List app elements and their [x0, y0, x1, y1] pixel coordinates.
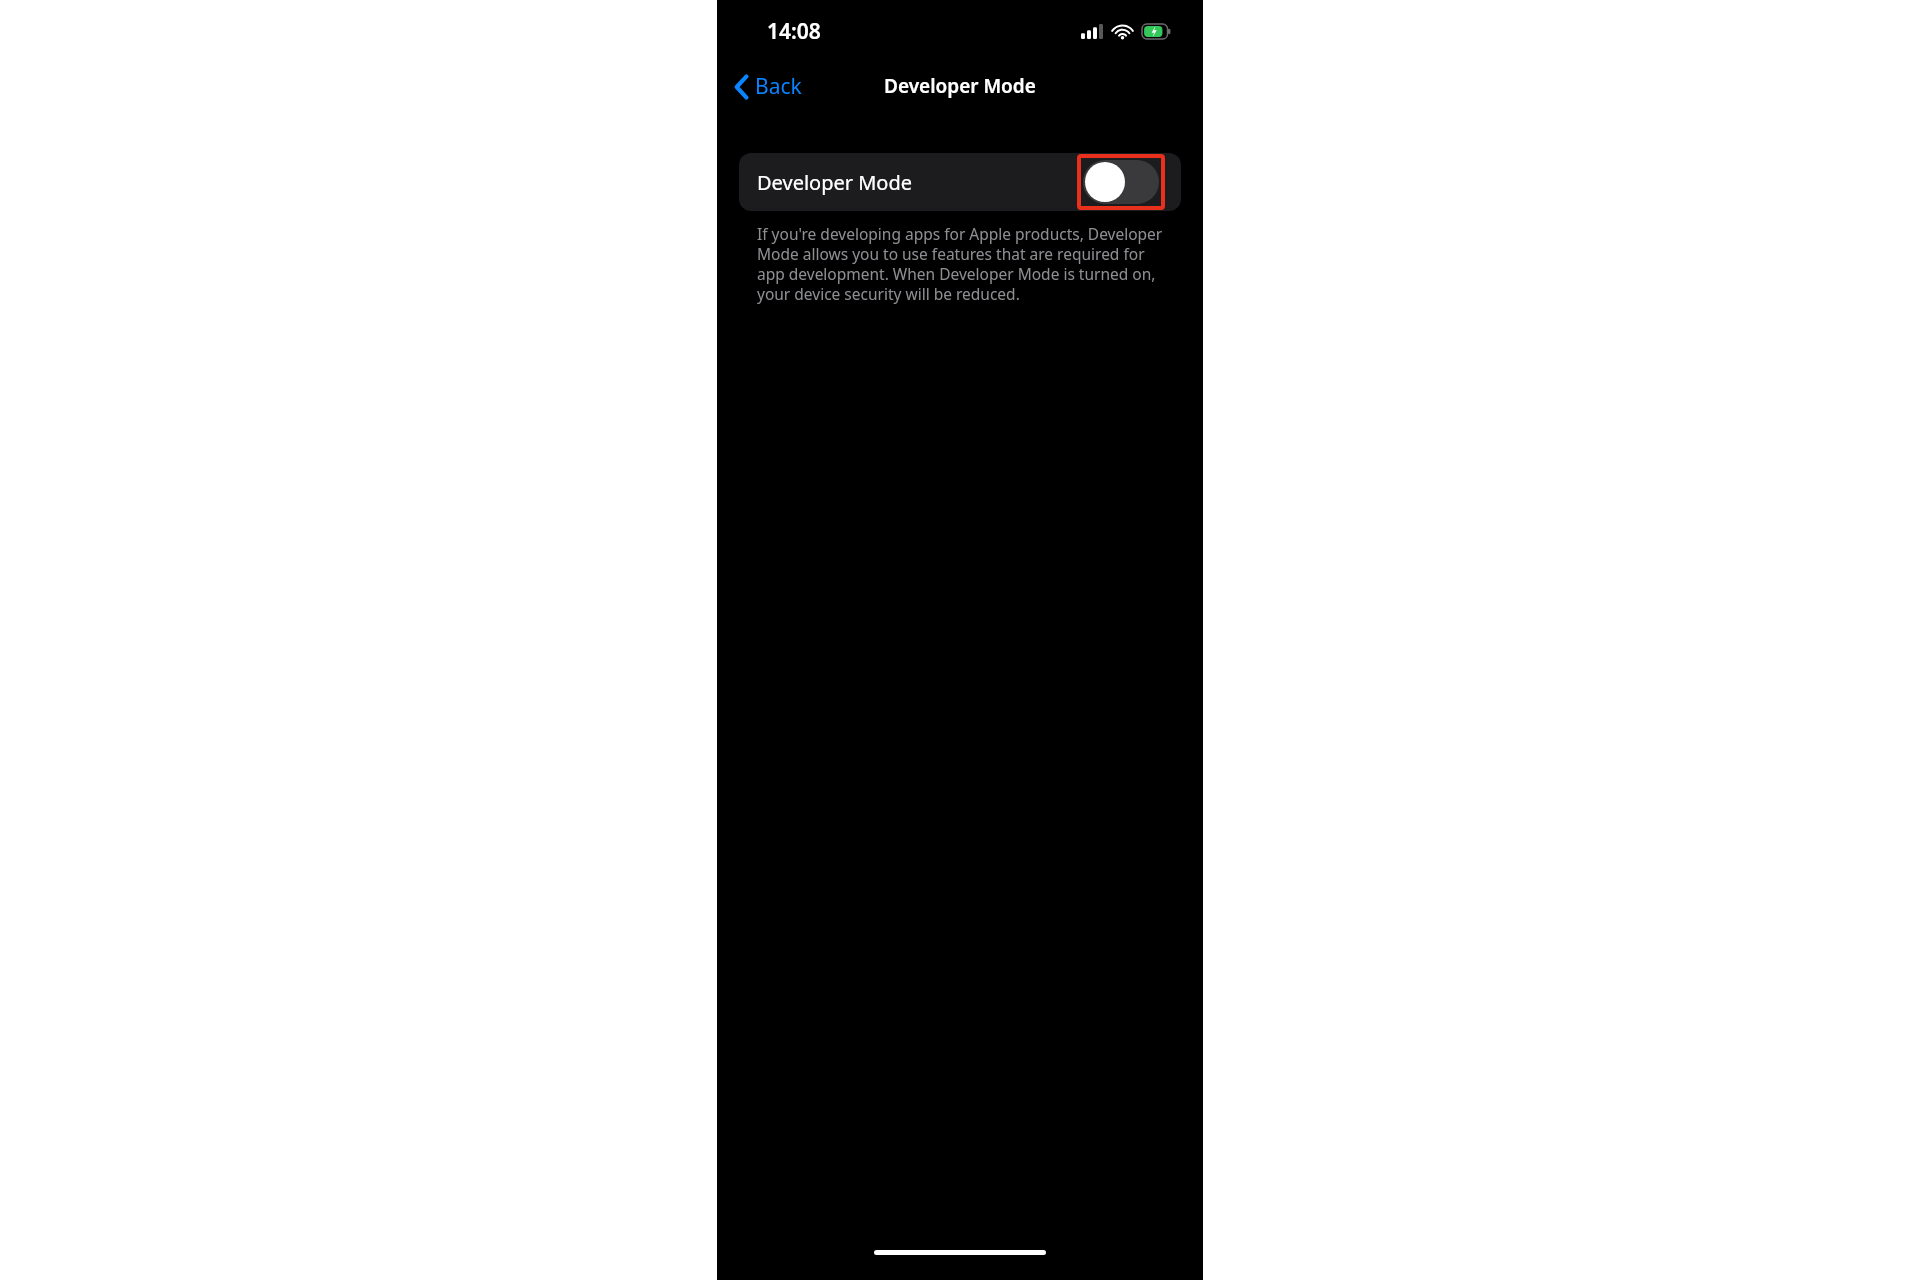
staticText: Developer Mode [757, 169, 1077, 196]
staticText: 14:08 [767, 17, 821, 46]
staticText: Developer Mode [884, 73, 1036, 99]
button[interactable]: Developer Mode toggle [1083, 160, 1159, 204]
button[interactable]: Back [729, 68, 808, 105]
staticText: Back [755, 72, 802, 101]
staticText: If you're developing apps for Apple prod… [757, 223, 1165, 304]
button[interactable]: Developer Mode [739, 153, 1181, 211]
